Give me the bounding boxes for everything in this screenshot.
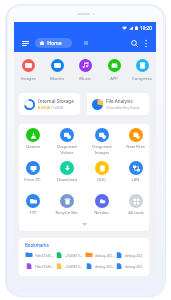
button[interactable]: Compress [128,59,156,82]
button[interactable]: All tools [122,194,149,227]
staticText: Home [47,40,62,47]
button[interactable]: Music [71,59,99,82]
staticText: 10:20 [140,25,152,31]
staticText: APP [110,76,118,82]
staticText: New Files [126,144,145,150]
button[interactable]: Cleaner [19,128,46,161]
button[interactable]: Files/2345... [25,251,55,259]
staticText: Disguised Videos [57,144,77,156]
staticText: -2345813... [65,264,83,269]
button[interactable]: Recycle Bin [53,194,80,227]
button[interactable]: File Analysis [87,93,149,115]
button[interactable]: From PC [19,161,46,194]
button[interactable]: DOC [88,161,115,194]
button[interactable]: Internal Storage [19,93,80,115]
staticText: Images [21,76,36,82]
staticText: Music [79,76,91,82]
button[interactable]: Images [14,59,42,82]
button[interactable]: debug.202... [85,251,115,259]
button[interactable]: Search [128,37,140,49]
button[interactable]: More options [141,38,151,48]
button[interactable]: Files/2345... [25,262,55,270]
staticText: debug.202... [125,253,143,258]
button[interactable]: Movies [43,59,71,82]
staticText: Movies [50,76,64,82]
staticText: Cleanable files found [106,105,140,110]
button[interactable]: Expand [73,220,95,229]
staticText: Compress [132,76,152,82]
button[interactable]: Menu [19,37,31,49]
staticText: debug.202... [95,253,115,258]
button[interactable]: Download [53,161,80,194]
staticText: DOC [97,177,106,183]
staticText: From PC [24,177,41,183]
staticText: Netdisc [94,210,109,216]
button[interactable]: LAN [122,161,149,194]
staticText: Recycle Bin [55,210,78,216]
staticText: Disguised Images [92,144,112,156]
button[interactable]: Home [35,38,72,48]
staticText: 8.93GB [38,105,51,110]
button[interactable]: APP [100,59,128,82]
staticText: File Analysis [106,98,133,104]
staticText: Files/2345... [35,264,54,269]
staticText: -2345813... [65,253,83,258]
staticText: debug.202... [95,264,115,269]
staticText: Files/2345... [35,253,54,258]
button[interactable]: Netdisc [88,194,115,227]
staticText: FTP [29,210,37,216]
staticText: debug.202... [125,264,143,269]
button[interactable]: debug.202... [115,262,143,270]
button[interactable]: Apps [82,39,90,47]
button[interactable]: -2345813... [55,251,85,259]
button[interactable]: debug.202... [115,251,143,259]
staticText: Bookmarks [25,242,49,248]
button[interactable]: Disguised Videos [53,128,80,161]
staticText: All tools [128,210,144,216]
button[interactable]: New Files [122,128,149,161]
button[interactable]: -2345813... [55,262,85,270]
staticText: Cleaner [25,144,41,150]
button[interactable]: debug.202... [85,262,115,270]
staticText: Download [57,177,77,183]
staticText: LAN [131,177,140,183]
staticText: Internal Storage [38,98,74,104]
button[interactable]: FTP [19,194,46,227]
button[interactable]: Disguised Images [88,128,115,161]
staticText: /128GB [51,105,64,110]
